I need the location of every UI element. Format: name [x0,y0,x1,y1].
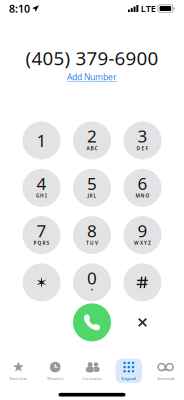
button[interactable]: Contacts [74,358,110,384]
button[interactable]: 5 [73,169,111,207]
staticText: P Q R S [33,240,49,246]
staticText: 6 [137,172,147,195]
button[interactable]: Favorites [0,358,37,384]
button[interactable]: 8 [73,216,111,254]
button[interactable]: 0 [73,263,111,301]
staticText: Keypad [121,376,136,381]
staticText: Add Number [67,71,117,83]
staticText: M N O [135,192,149,199]
button[interactable]: 7 [22,216,60,254]
button[interactable]: 6 [123,169,161,207]
button[interactable]: Voicemail [147,358,184,384]
staticText: 8 [87,219,97,242]
staticText: A B C [86,145,97,151]
staticText: 2 [87,124,97,148]
staticText: 8:10 [9,1,30,16]
button[interactable]: Recents [37,358,74,384]
button[interactable]: 3 [123,121,161,159]
button[interactable]: Pound [123,263,161,301]
staticText: Contacts [82,376,101,381]
button[interactable]: Call [73,303,111,341]
button[interactable]: 9 [123,216,161,254]
staticText: 0 [87,266,97,289]
staticText: T U V [86,240,98,246]
staticText: Favorites [9,376,27,381]
staticText: 9 [137,219,147,242]
button[interactable]: 2 [73,121,111,159]
staticText: LTE [141,2,156,15]
button[interactable]: Delete [123,303,161,341]
staticText: 7 [36,219,46,242]
staticText: 4 [36,172,46,195]
staticText: Recents [47,376,63,381]
button[interactable]: Add Number [63,72,121,82]
staticText: J K L [87,192,96,199]
staticText: 3 [137,124,147,148]
staticText: (405) 379-6900 [25,45,158,71]
staticText: W X Y Z [134,240,151,246]
staticText: D E F [136,145,148,151]
button[interactable]: 1 [22,121,60,159]
button[interactable]: 4 [22,169,60,207]
staticText: Voicemail [157,376,175,381]
staticText: + [90,287,93,293]
button[interactable]: Star [22,263,60,301]
staticText: 1 [36,129,46,152]
button[interactable]: Keypad [110,358,147,384]
staticText: G H I [36,192,47,199]
staticText: 5 [87,172,97,195]
